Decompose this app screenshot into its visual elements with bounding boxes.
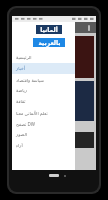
button[interactable]: ألمانيا [36, 25, 62, 34]
button[interactable]: سياسة واقتصاد [12, 74, 75, 85]
button[interactable]: ثقافة [12, 96, 75, 107]
staticText: تصفح DW [16, 121, 35, 127]
button[interactable]: الصور [12, 129, 75, 140]
staticText: بالعربية [38, 39, 61, 46]
staticText: تعلم الألماني معنا [16, 110, 48, 116]
staticText: الرئيسية [16, 55, 32, 60]
button[interactable]: More options [85, 24, 93, 32]
staticText: آراء [16, 143, 23, 148]
staticText: ثقافة [16, 99, 26, 104]
button[interactable]: رياضة [12, 85, 75, 96]
staticText: رياضة [16, 88, 28, 93]
staticText: الصور [16, 132, 28, 137]
button[interactable]: بالعربية [33, 38, 65, 47]
button[interactable]: أخبار [12, 63, 75, 74]
button[interactable]: آراء [12, 140, 75, 151]
staticText: ألمانيا [40, 26, 58, 33]
button[interactable]: تصفح DW [12, 118, 75, 129]
staticText: أخبار [16, 66, 25, 71]
button[interactable]: الرئيسية [12, 52, 75, 63]
staticText: سياسة واقتصاد [16, 77, 45, 83]
button[interactable]: تعلم الألماني معنا [12, 107, 75, 118]
